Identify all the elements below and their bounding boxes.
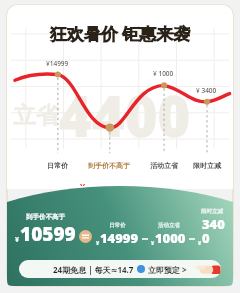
staticText: 10599 — [20, 221, 76, 247]
staticText: ¥ — [80, 180, 86, 186]
other: 立即预定 — [195, 259, 221, 279]
staticText: 限时立减 — [201, 208, 223, 215]
staticText: 4400 — [59, 77, 191, 153]
staticText: 1000 — [155, 229, 186, 247]
staticText: 到手价不高于 — [26, 213, 65, 221]
staticText: 到手价不高于 — [88, 161, 130, 170]
staticText: ¥ 3400 — [196, 86, 217, 95]
staticText: 10599 — [86, 180, 160, 189]
staticText: 14999 — [100, 229, 139, 247]
staticText: ¥14999 — [46, 59, 69, 68]
staticText: 日常价 — [47, 161, 68, 170]
staticText: 限时立减 — [193, 161, 221, 170]
staticText: 立即预定 > — [148, 264, 187, 275]
staticText: ¥ — [96, 239, 100, 246]
staticText: 日常价 — [109, 222, 126, 229]
staticText: ¥ — [15, 235, 20, 245]
staticText: ¥ — [151, 239, 155, 246]
staticText: ¥ — [198, 239, 202, 246]
staticText: ¥ 1000 — [153, 69, 174, 78]
staticText: 3400 — [202, 215, 225, 247]
staticText: 立省 — [13, 101, 59, 130]
staticText: 狂欢暑价 钜惠来袭 — [7, 22, 233, 45]
staticText: 活动立省 — [150, 161, 178, 170]
staticText: 24期免息 | 每天≈14.7 — [53, 264, 134, 275]
staticText: 活动立省 — [158, 222, 180, 229]
button[interactable]: 24期免息 | 每天≈14.7 — [19, 260, 221, 278]
